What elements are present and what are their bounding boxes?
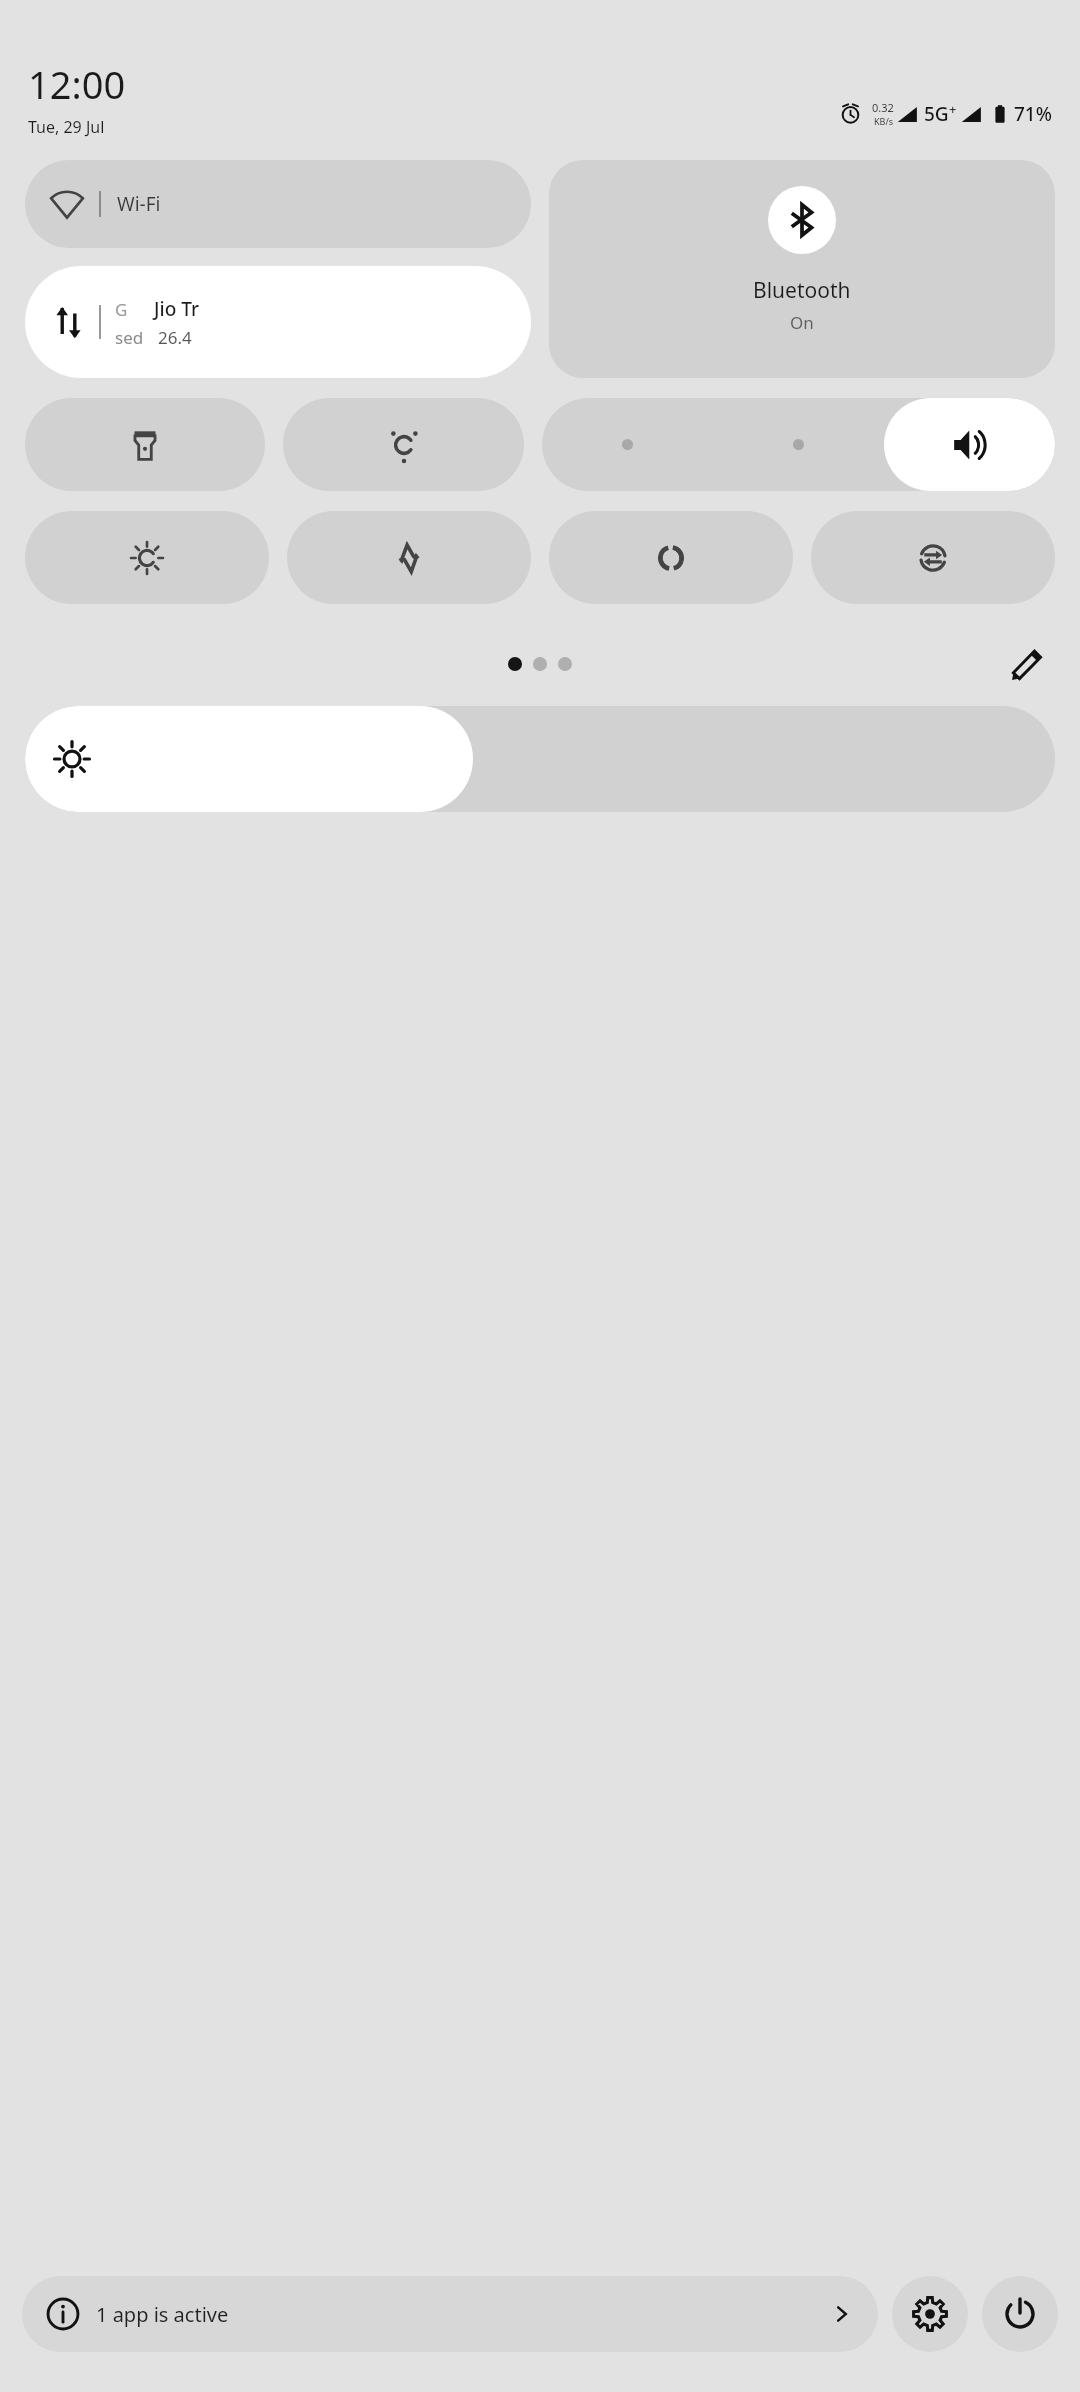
staticText: 12:00 (28, 58, 126, 110)
button[interactable]: 1 app is active (22, 2276, 878, 2352)
button[interactable]: Flashlight (25, 398, 265, 491)
button[interactable]: Settings (892, 2276, 968, 2352)
staticText: 71% (1014, 101, 1052, 127)
button[interactable]: Auto brightness (25, 511, 269, 604)
staticText: On (790, 311, 814, 334)
staticText: G (115, 298, 128, 321)
staticText: sed (115, 326, 144, 349)
button[interactable]: Sound mode (542, 398, 1055, 491)
staticText: KB/s (874, 115, 894, 127)
button[interactable]: G (25, 266, 531, 378)
staticText: Tue, 29 Jul (28, 116, 105, 138)
staticText: + (949, 100, 957, 118)
button[interactable]: Bluetooth (549, 160, 1055, 378)
staticText: 0.32 (872, 100, 894, 115)
button[interactable]: Edit tiles (999, 636, 1055, 692)
button[interactable]: Sync (811, 511, 1055, 604)
staticText: 26.4 (158, 326, 192, 349)
staticText: Bluetooth (753, 276, 851, 305)
button[interactable]: Data transfer (287, 511, 531, 604)
staticText: 5G (924, 101, 949, 127)
staticText: 1 app is active (96, 2301, 229, 2328)
staticText: Jio Tr (154, 296, 199, 322)
button[interactable]: Auto rotate (549, 511, 793, 604)
button[interactable]: Brightness (25, 706, 1055, 812)
button[interactable]: Power (982, 2276, 1058, 2352)
button[interactable]: Temperature (283, 398, 524, 491)
staticText: Wi-Fi (117, 191, 161, 217)
button[interactable]: Wi-Fi (25, 160, 531, 248)
